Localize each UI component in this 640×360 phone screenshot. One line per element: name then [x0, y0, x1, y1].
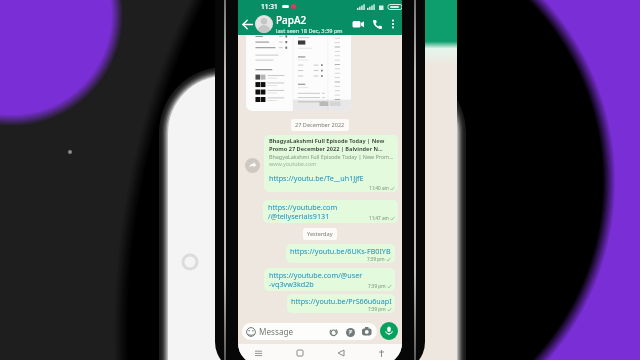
button[interactable]: Back — [240, 17, 254, 31]
button[interactable]: BhagyaLakshmi Full Episode Today | New P… — [264, 135, 398, 192]
button[interactable]: Message — [242, 323, 377, 340]
button[interactable]: Attach — [327, 326, 339, 338]
button[interactable]: Forward — [245, 158, 260, 173]
staticText: Message — [259, 326, 294, 337]
staticText: www.youtube.com — [269, 160, 317, 167]
button[interactable]: Video call — [351, 17, 365, 31]
staticText: https://youtube.com/@user -vq3vw3kd2b — [269, 270, 363, 289]
staticText: 7:39 pm — [368, 306, 386, 312]
button[interactable]: Keyboard — [361, 344, 402, 360]
staticText: BhagyaLakshmi Full Episode Today | New P… — [269, 153, 394, 160]
button[interactable]: Camera — [361, 326, 373, 338]
staticText: https://youtu.be/Te__uh1JjfE — [269, 173, 364, 183]
button[interactable]: https://youtube.com/@user -vq3vw3kd2b — [264, 268, 395, 291]
staticText: BhagyaLakshmi Full Episode Today | New P… — [269, 137, 395, 153]
staticText: https://youtube.com /@tellyserials9131 — [268, 202, 338, 221]
staticText: 27 December 2022 — [295, 121, 345, 129]
staticText: 11:47 am — [369, 215, 389, 221]
staticText: last seen 18 Dec, 3:39 pm — [276, 27, 343, 35]
button[interactable]: https://youtube.com /@tellyserials9131 — [263, 200, 398, 223]
staticText: Yesterday — [307, 230, 333, 238]
button[interactable]: Voice call — [370, 17, 384, 31]
button[interactable] — [246, 20, 351, 111]
button[interactable]: https://youtu.be/6UKs-FB0IYB — [286, 244, 395, 263]
staticText: PapA2 — [276, 13, 307, 27]
staticText: 11:40 am — [369, 185, 389, 191]
button[interactable]: More options — [387, 18, 399, 30]
button[interactable]: Voice message — [380, 322, 398, 340]
button[interactable]: Recents — [238, 344, 279, 360]
button[interactable]: Home — [279, 344, 320, 360]
button[interactable]: https://youtu.be/PrS66u6uapI — [287, 294, 395, 313]
staticText: https://youtu.be/6UKs-FB0IYB — [290, 246, 391, 256]
button[interactable]: Back — [320, 344, 361, 360]
staticText: https://youtu.be/PrS66u6uapI — [291, 296, 392, 306]
staticText: 7:39 pm — [367, 256, 385, 262]
staticText: 11:31 — [261, 2, 278, 11]
button[interactable]: Payments — [344, 326, 356, 338]
staticText: 7:39 pm — [368, 283, 386, 289]
